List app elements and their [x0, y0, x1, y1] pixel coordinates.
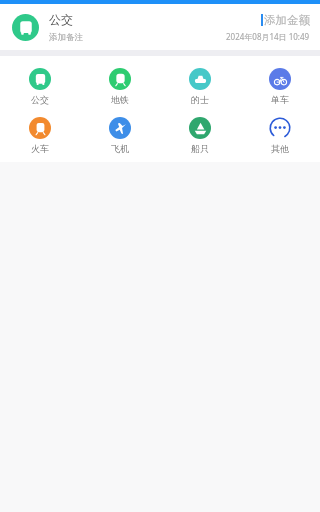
- staticText: 2024年08月14日 10:49: [226, 31, 310, 42]
- staticText: 添加金额: [264, 13, 310, 27]
- staticText: 公交: [49, 12, 73, 27]
- button[interactable]: 公交: [0, 4, 320, 50]
- button[interactable]: 其他: [240, 115, 320, 156]
- button[interactable]: 的士: [160, 66, 240, 107]
- staticText: 火车: [31, 143, 49, 154]
- staticText: 船只: [191, 143, 209, 154]
- staticText: 的士: [191, 94, 209, 105]
- button[interactable]: 火车: [0, 115, 80, 156]
- staticText: 其他: [271, 143, 289, 154]
- staticText: 单车: [271, 94, 289, 105]
- button[interactable]: 地铁: [80, 66, 160, 107]
- button[interactable]: 飞机: [80, 115, 160, 156]
- staticText: 飞机: [111, 143, 129, 154]
- button[interactable]: 单车: [240, 66, 320, 107]
- staticText: 地铁: [111, 94, 129, 105]
- other: 公交: [12, 14, 39, 41]
- staticText: 公交: [31, 94, 49, 105]
- button[interactable]: 船只: [160, 115, 240, 156]
- staticText: 添加备注: [49, 32, 83, 43]
- button[interactable]: 公交: [0, 66, 80, 107]
